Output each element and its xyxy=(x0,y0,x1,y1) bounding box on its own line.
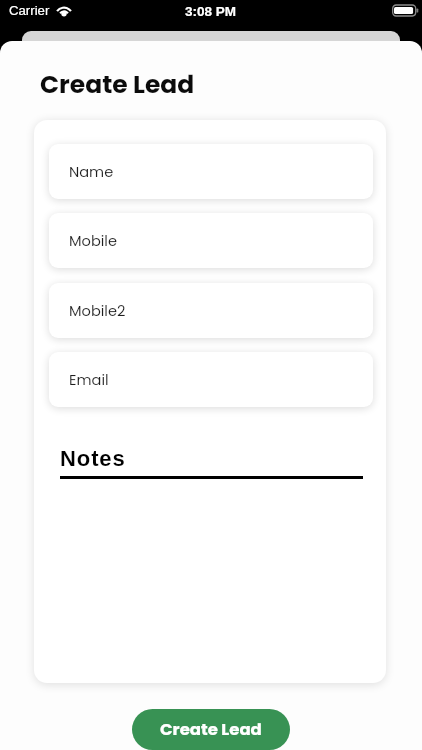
staticText: Create Lead xyxy=(160,718,262,741)
staticText: 3:08 PM xyxy=(185,4,237,19)
staticText: Mobile xyxy=(69,231,117,251)
button[interactable]: Name xyxy=(43,138,379,205)
button[interactable]: Create Lead xyxy=(132,709,290,750)
staticText: Mobile2 xyxy=(69,301,126,321)
staticText: Create Lead xyxy=(40,67,195,102)
button[interactable]: Mobile2 xyxy=(43,277,379,344)
button[interactable]: Notes xyxy=(60,438,363,668)
staticText: Carrier xyxy=(9,3,50,18)
staticText: Email xyxy=(69,370,109,390)
other: Wi-Fi signal xyxy=(56,5,72,16)
staticText: Name xyxy=(69,162,114,182)
other: Battery full xyxy=(392,2,422,18)
button[interactable]: Email xyxy=(43,346,379,413)
staticText: Notes xyxy=(60,446,126,471)
button[interactable]: Mobile xyxy=(43,207,379,274)
